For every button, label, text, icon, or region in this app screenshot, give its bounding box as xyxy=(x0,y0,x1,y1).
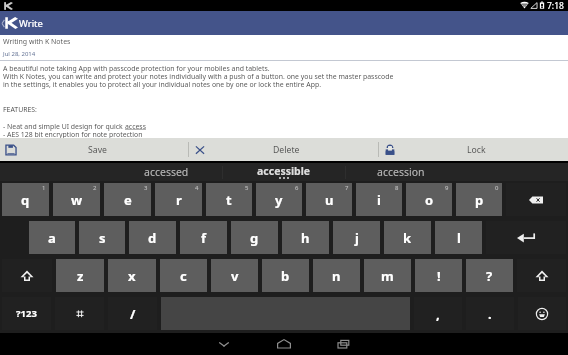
staticText: g xyxy=(250,229,259,247)
button[interactable]: h xyxy=(282,221,329,254)
staticText: Delete xyxy=(273,144,300,156)
staticText: k xyxy=(403,229,412,247)
staticText: j xyxy=(355,229,359,247)
button[interactable]: Shift xyxy=(517,259,566,292)
button[interactable]: Backspace xyxy=(506,183,566,216)
staticText: 9 xyxy=(445,184,449,192)
button[interactable]: Save xyxy=(0,138,188,161)
staticText: e xyxy=(124,191,132,209)
staticText: - AES 128 bit encryption for note protec… xyxy=(3,130,143,139)
button[interactable]: ? xyxy=(466,259,513,292)
staticText: With K Notes, you can write and protect … xyxy=(3,72,394,81)
staticText: accessible xyxy=(257,164,311,178)
staticText: s xyxy=(99,229,106,247)
button[interactable]: v xyxy=(211,259,258,292)
button[interactable]: Enter xyxy=(486,221,566,254)
button[interactable]: w xyxy=(53,183,100,216)
staticText: access xyxy=(125,122,146,131)
button[interactable]: x xyxy=(108,259,156,292)
staticText: 4 xyxy=(195,184,199,192)
button[interactable]: Delete xyxy=(189,138,378,161)
staticText: o xyxy=(425,191,434,209)
button[interactable]: . xyxy=(466,297,514,330)
button[interactable]: Emoji xyxy=(518,297,566,330)
button[interactable]: p xyxy=(456,183,502,216)
button[interactable]: Shift xyxy=(2,259,52,292)
staticText: n xyxy=(332,267,341,285)
staticText: Lock xyxy=(467,144,486,156)
button[interactable]: / xyxy=(108,297,157,330)
staticText: q xyxy=(21,191,30,209)
button[interactable]: Hide keyboard xyxy=(211,333,237,355)
button[interactable]: ! xyxy=(415,259,462,292)
button[interactable]: , xyxy=(414,297,462,330)
button[interactable]: accessed xyxy=(111,163,222,181)
staticText: . xyxy=(488,305,492,323)
button[interactable]: u xyxy=(306,183,352,216)
button[interactable]: b xyxy=(262,259,309,292)
staticText: h xyxy=(301,229,310,247)
button[interactable]: Home xyxy=(271,333,297,355)
staticText: c xyxy=(180,267,187,285)
staticText: 7 xyxy=(345,184,349,192)
staticText: accession xyxy=(377,165,425,179)
button[interactable]: e xyxy=(104,183,151,216)
button[interactable]: Lock xyxy=(379,138,568,161)
staticText: 3 xyxy=(144,184,148,192)
button[interactable]: k xyxy=(384,221,431,254)
button[interactable]: accession xyxy=(346,163,456,181)
button[interactable]: t xyxy=(206,183,252,216)
button[interactable]: i xyxy=(356,183,402,216)
staticText: / xyxy=(130,305,136,323)
staticText: x xyxy=(128,267,136,285)
staticText: v xyxy=(231,267,239,285)
staticText: accessed xyxy=(144,165,189,179)
staticText: 7:18 xyxy=(547,0,564,11)
button[interactable]: r xyxy=(155,183,202,216)
staticText: FEATURES: xyxy=(3,105,37,114)
staticText: a xyxy=(48,229,56,247)
button[interactable]: Navigate up xyxy=(0,11,19,35)
button[interactable]: Change language xyxy=(55,297,104,330)
staticText: p xyxy=(475,191,484,209)
staticText: in the settings, it enables you to prote… xyxy=(3,80,321,89)
button[interactable]: o xyxy=(406,183,452,216)
staticText: A beautiful note taking App with passcod… xyxy=(3,64,270,73)
button[interactable]: accessible xyxy=(223,163,345,181)
staticText: Jul 28, 2014 xyxy=(3,50,36,58)
staticText: Save xyxy=(88,144,107,156)
button[interactable]: j xyxy=(333,221,380,254)
button[interactable]: q xyxy=(2,183,49,216)
button[interactable]: n xyxy=(313,259,360,292)
staticText: 6 xyxy=(295,184,299,192)
staticText: l xyxy=(457,229,461,247)
staticText: 8 xyxy=(395,184,399,192)
staticText: , xyxy=(436,305,440,323)
staticText: ? xyxy=(486,267,493,285)
staticText: Writing with K Notes xyxy=(3,37,71,47)
staticText: r xyxy=(176,191,182,209)
staticText: Write xyxy=(19,17,43,30)
button[interactable]: ?123 xyxy=(2,297,51,330)
button[interactable]: f xyxy=(180,221,227,254)
button[interactable]: l xyxy=(435,221,482,254)
button[interactable]: a xyxy=(29,221,75,254)
staticText: - Neat and simple UI design for quick xyxy=(3,122,125,131)
staticText: 1 xyxy=(42,184,46,192)
button[interactable]: d xyxy=(129,221,176,254)
button[interactable]: g xyxy=(231,221,278,254)
button[interactable]: m xyxy=(364,259,411,292)
staticText: m xyxy=(381,267,394,285)
staticText: t xyxy=(226,191,232,209)
button[interactable]: c xyxy=(160,259,207,292)
button[interactable]: z xyxy=(56,259,104,292)
staticText: 0 xyxy=(495,184,499,192)
button[interactable]: Recent apps xyxy=(331,333,357,355)
staticText: u xyxy=(325,191,334,209)
button[interactable]: y xyxy=(256,183,302,216)
staticText: b xyxy=(281,267,290,285)
staticText: d xyxy=(148,229,157,247)
button[interactable]: s xyxy=(79,221,125,254)
staticText: i xyxy=(377,191,381,209)
